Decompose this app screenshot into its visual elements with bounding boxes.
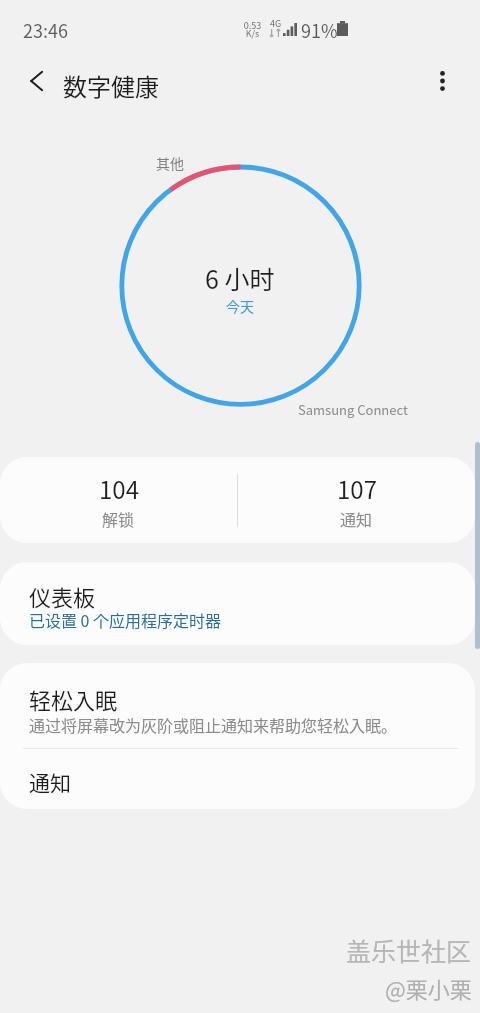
staticText: 仪表板	[29, 580, 96, 612]
staticText: 轻松入眠	[29, 683, 118, 715]
staticText: 104	[99, 471, 139, 506]
staticText: 今天	[226, 296, 254, 316]
staticText: 23:46	[23, 17, 68, 43]
staticText: 已设置 0 个应用程序定时器	[29, 608, 222, 631]
staticText: 107	[337, 471, 377, 506]
button[interactable]: More options	[422, 61, 462, 101]
button[interactable]: 轻松入眠	[0, 663, 475, 748]
staticText: 91%	[301, 17, 338, 43]
staticText: 0.53	[243, 19, 262, 32]
staticText: K/s	[243, 27, 262, 40]
staticText: 通过将屏幕改为灰阶或阻止通知来帮助您轻松入眠。	[29, 713, 398, 736]
staticText: 其他	[156, 153, 184, 173]
staticText: @栗小栗	[385, 972, 472, 1004]
staticText: 6 小时	[205, 260, 275, 296]
staticText: 通知	[340, 507, 373, 530]
button[interactable]: 仪表板	[0, 562, 475, 645]
staticText: 通知	[29, 767, 71, 797]
staticText: 4G	[270, 17, 282, 30]
staticText: Samsung Connect	[298, 400, 408, 419]
button[interactable]: Back	[14, 59, 58, 103]
staticText: 数字健康	[63, 68, 159, 103]
staticText: 解锁	[102, 507, 135, 530]
button[interactable]: 104	[0, 457, 237, 543]
button[interactable]: 通知	[0, 749, 475, 809]
button[interactable]: 107	[238, 457, 475, 543]
staticText: 盖乐世社区	[346, 932, 472, 968]
